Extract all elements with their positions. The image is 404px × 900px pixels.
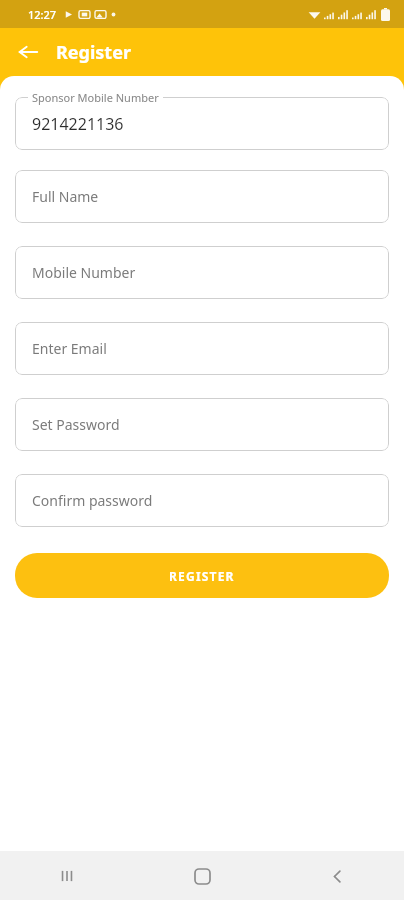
button[interactable]: Set Password	[15, 398, 389, 451]
button[interactable]: 9214221136	[15, 97, 389, 150]
button[interactable]: Home	[178, 852, 226, 900]
button[interactable]: REGISTER	[15, 553, 389, 598]
staticText: Register	[56, 40, 131, 65]
staticText: Confirm password	[32, 491, 153, 510]
staticText: Full Name	[32, 187, 99, 206]
button[interactable]: Recent apps	[43, 852, 91, 900]
staticText: Sponsor Mobile Number	[32, 90, 159, 105]
staticText: 12:27	[28, 7, 57, 22]
button[interactable]: Mobile Number	[15, 246, 389, 299]
button[interactable]: Back	[313, 852, 361, 900]
staticText: REGISTER	[169, 568, 235, 584]
staticText: Set Password	[32, 415, 120, 434]
button[interactable]: Enter Email	[15, 322, 389, 375]
staticText: 9214221136	[32, 113, 124, 135]
button[interactable]: Back	[8, 32, 48, 72]
button[interactable]: Full Name	[15, 170, 389, 223]
staticText: Mobile Number	[32, 263, 136, 282]
button[interactable]: Confirm password	[15, 474, 389, 527]
staticText: Enter Email	[32, 339, 107, 358]
